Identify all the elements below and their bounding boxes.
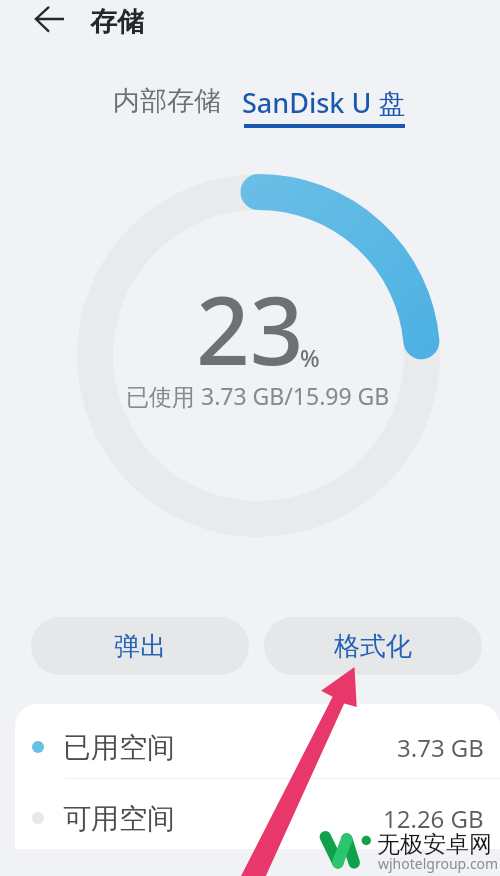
- button[interactable]: 可用空间: [15, 779, 500, 849]
- button[interactable]: 内部存储: [113, 84, 221, 118]
- staticText: 23: [196, 265, 304, 393]
- button[interactable]: 弹出: [31, 617, 249, 675]
- staticText: SanDisk U 盘: [242, 84, 406, 121]
- button[interactable]: 格式化: [264, 617, 482, 675]
- staticText: wjhotelgroup.com: [378, 854, 499, 873]
- staticText: 内部存储: [113, 84, 221, 118]
- staticText: 可用空间: [63, 801, 175, 836]
- staticText: 已使用 3.73 GB/15.99 GB: [126, 380, 390, 411]
- button[interactable]: SanDisk U 盘: [242, 84, 406, 128]
- staticText: 12.26 GB: [383, 802, 484, 835]
- staticText: 弹出: [114, 630, 166, 663]
- staticText: 存储: [90, 5, 144, 39]
- staticText: 无极安卓网: [377, 830, 492, 859]
- staticText: 格式化: [334, 630, 412, 663]
- button[interactable]: Back: [18, 0, 82, 51]
- staticText: %: [300, 342, 320, 373]
- staticText: 3.73 GB: [397, 731, 484, 764]
- staticText: 已用空间: [63, 730, 175, 765]
- button[interactable]: 已用空间: [15, 704, 500, 779]
